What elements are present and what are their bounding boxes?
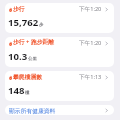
- staticText: 15,762: [8, 16, 39, 29]
- staticText: 下午1:20: [79, 5, 102, 13]
- staticText: 10.3: [8, 50, 28, 63]
- staticText: 步: [39, 22, 44, 28]
- staticText: 攀爬樓層數: [13, 73, 42, 80]
- button[interactable]: 步行: [5, 3, 114, 33]
- button[interactable]: 顯示所有健康資料: [5, 105, 114, 115]
- staticText: 下午1:13: [79, 73, 102, 81]
- button[interactable]: 攀爬樓層數: [5, 71, 114, 101]
- staticText: 下午1:20: [79, 39, 102, 47]
- staticText: 148: [8, 84, 25, 97]
- staticText: 樓: [25, 90, 30, 96]
- staticText: 顯示所有健康資料: [9, 107, 56, 114]
- staticText: 步行: [13, 5, 25, 12]
- button[interactable]: 步行 + 跑步距離: [5, 37, 114, 67]
- staticText: 公里: [28, 56, 37, 62]
- staticText: 步行 + 跑步距離: [13, 38, 55, 46]
